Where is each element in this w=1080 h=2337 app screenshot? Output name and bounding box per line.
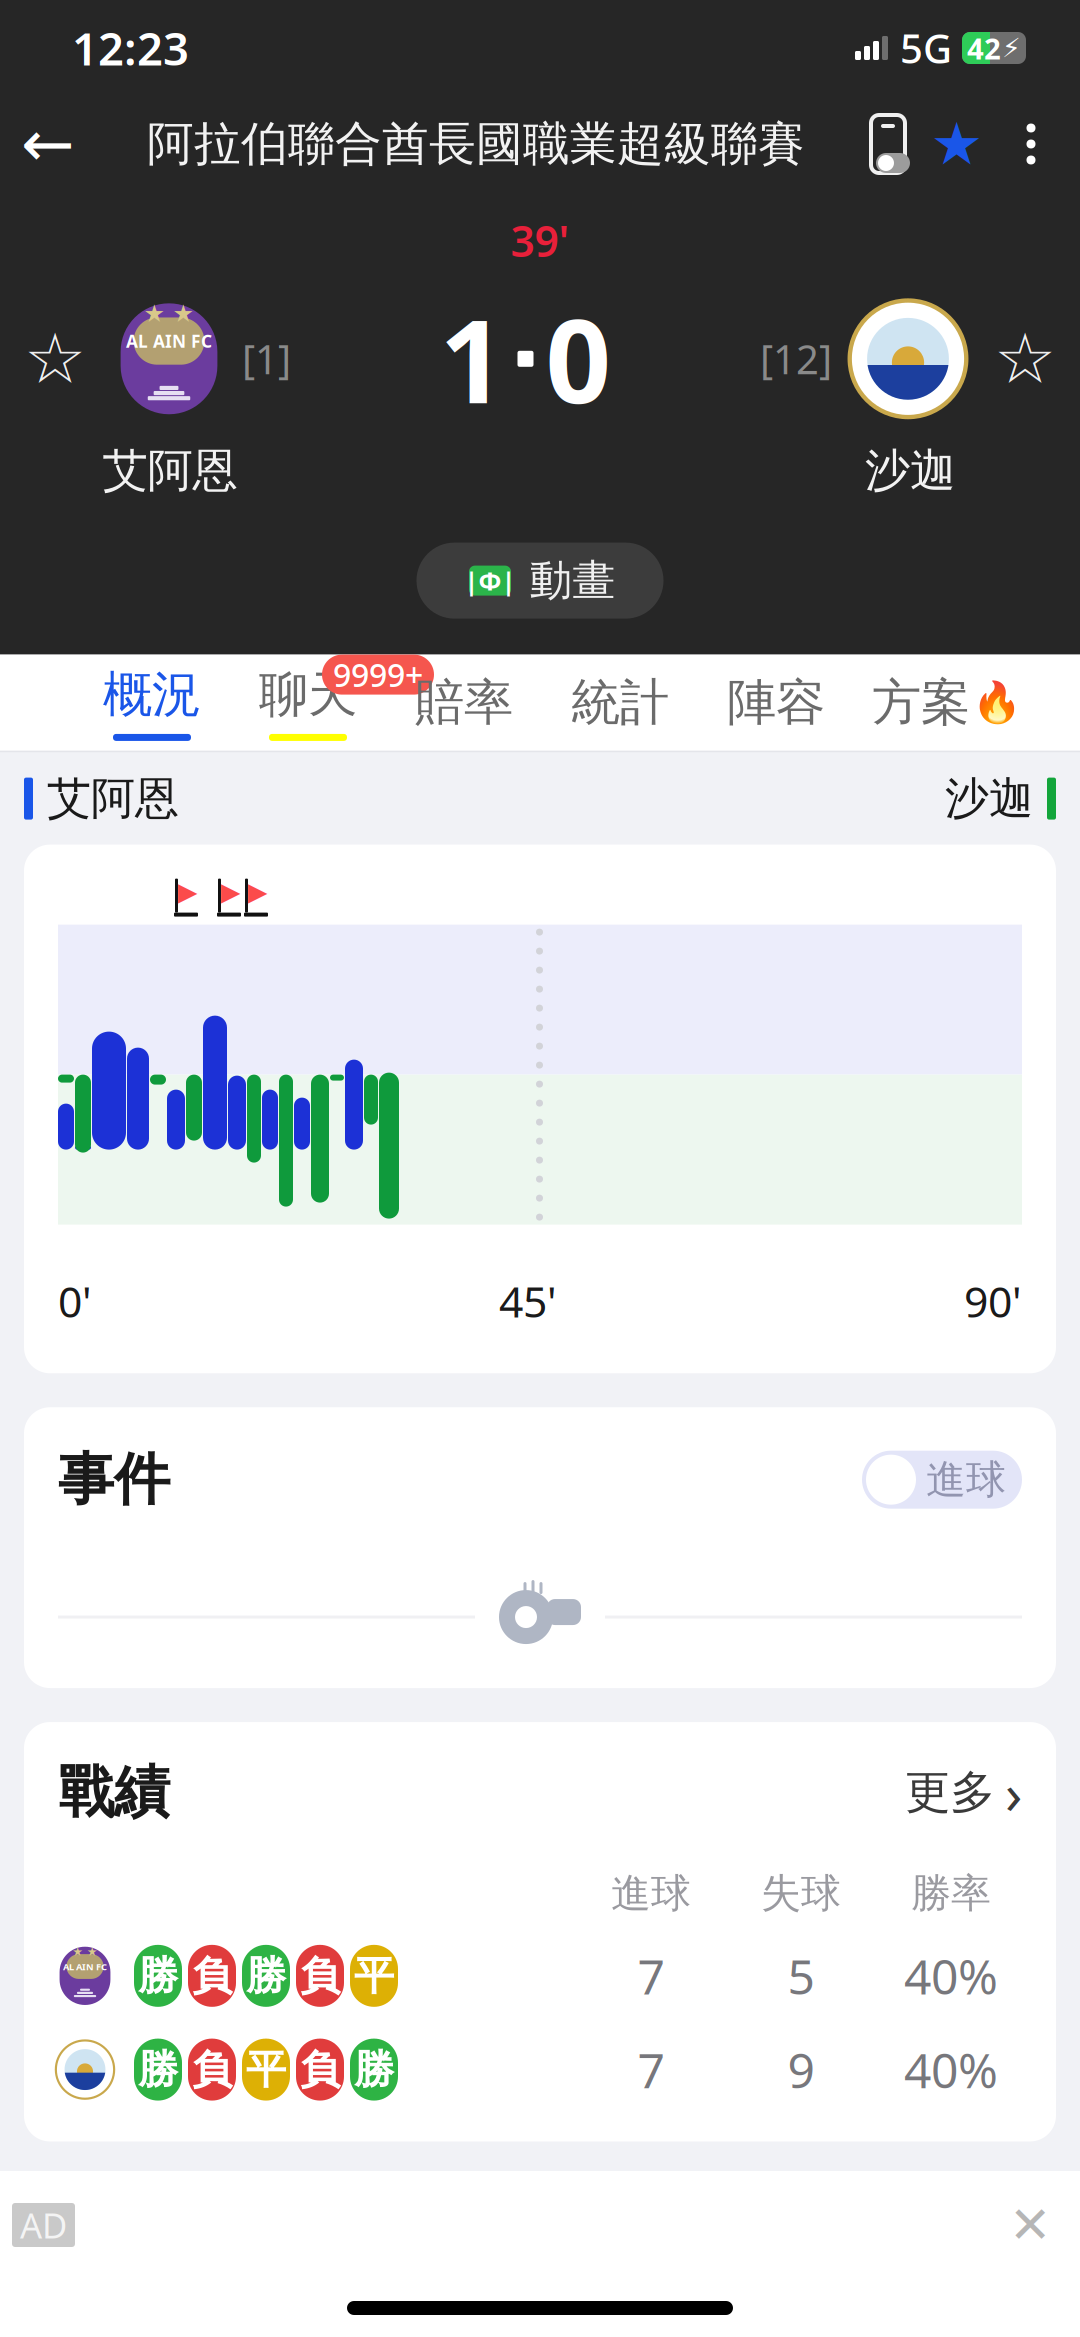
staticText: 40% <box>904 1944 998 2008</box>
staticText: AL AIN FC <box>63 1960 107 1973</box>
staticText: ✕ <box>1009 2196 1051 2254</box>
staticText: 7 <box>637 1944 664 2008</box>
staticText: › <box>1005 1755 1022 1830</box>
staticText: 進球 <box>926 1455 1006 1504</box>
staticText: 更多 <box>905 1765 995 1820</box>
staticText: ★ <box>72 1945 83 1958</box>
staticText: 方案 <box>872 672 970 733</box>
button[interactable]: Favourite <box>920 96 994 192</box>
staticText: 勝 <box>138 1951 178 2000</box>
staticText: 艾阿恩 <box>102 443 237 499</box>
staticText: 賠率 <box>415 672 513 733</box>
staticText: 平 <box>246 2045 286 2094</box>
staticText: 失球 <box>761 1869 841 1918</box>
staticText: 5 <box>787 1944 814 2008</box>
button[interactable]: |Φ| <box>416 543 663 619</box>
staticText: 負 <box>300 2045 340 2094</box>
staticText: ⚡︎ <box>1002 33 1021 63</box>
staticText: 0' <box>58 1273 92 1329</box>
staticText: ★ <box>930 111 983 177</box>
staticText: ★ <box>172 300 194 327</box>
staticText: 沙迦 <box>945 772 1033 826</box>
staticText: 勝 <box>354 2045 394 2094</box>
button[interactable]: Notifications <box>856 96 920 192</box>
button[interactable]: Follow 沙迦 <box>970 304 1080 414</box>
button[interactable]: 聊天 <box>230 655 386 751</box>
staticText: 7 <box>637 2038 664 2101</box>
button[interactable]: Back <box>0 96 96 192</box>
staticText: 阿拉伯聯合酋長國職業超級聯賽 <box>147 115 805 173</box>
staticText: 進球 <box>611 1869 691 1918</box>
staticText: 勝率 <box>911 1869 991 1918</box>
staticText: 9 <box>787 2038 814 2101</box>
staticText: 5G <box>900 21 952 74</box>
staticText: AD <box>20 2202 67 2248</box>
button[interactable]: Close ad <box>994 2189 1066 2261</box>
staticText: [12] <box>760 332 832 385</box>
staticText: 0 <box>545 283 611 435</box>
button[interactable]: 概況 <box>74 655 230 751</box>
staticText: 負 <box>192 1951 232 2000</box>
staticText: 🔥 <box>972 680 1022 725</box>
staticText: 沙迦 <box>865 443 955 499</box>
staticText: [1] <box>242 332 291 385</box>
staticText: ★ <box>87 1945 98 1958</box>
staticText: 負 <box>300 1951 340 2000</box>
staticText: 事件 <box>58 1445 170 1514</box>
staticText: ▶ <box>248 877 267 906</box>
staticText: 統計 <box>571 672 669 733</box>
button[interactable]: More options <box>994 96 1068 192</box>
button[interactable]: 更多 <box>905 1762 1022 1822</box>
staticText: 陣容 <box>727 672 825 733</box>
staticText: 平 <box>354 1951 394 2000</box>
staticText: 9999+ <box>333 653 423 696</box>
staticText: ▶ <box>221 877 240 906</box>
staticText: 1 <box>439 283 505 435</box>
staticText: |Φ| <box>464 564 515 597</box>
staticText: 勝 <box>246 1951 286 2000</box>
staticText: 動畫 <box>529 554 615 607</box>
button[interactable]: 統計 <box>542 655 698 751</box>
staticText: ← <box>21 108 75 180</box>
button[interactable]: 方案 <box>854 655 1040 751</box>
staticText: 概況 <box>103 664 201 725</box>
staticText: 勝 <box>138 2045 178 2094</box>
staticText: AL AIN FC <box>126 330 212 353</box>
staticText: ☆ <box>994 319 1056 398</box>
staticText: ☆ <box>24 319 86 398</box>
staticText: 40% <box>904 2038 998 2101</box>
staticText: 12:23 <box>72 18 189 78</box>
staticText: 42 <box>967 28 1001 67</box>
staticText: ▶ <box>178 877 197 906</box>
staticText: 90' <box>964 1273 1022 1329</box>
staticText: 負 <box>192 2045 232 2094</box>
staticText: 聊天 <box>259 664 357 725</box>
staticText: 39' <box>510 212 569 269</box>
button[interactable]: Follow 艾阿恩 <box>0 304 110 414</box>
staticText: 艾阿恩 <box>47 772 179 826</box>
staticText: 45' <box>499 1273 557 1329</box>
button[interactable]: 陣容 <box>698 655 854 751</box>
button[interactable]: 賠率 <box>386 655 542 751</box>
staticText: ★ <box>143 300 165 327</box>
staticText: 戰績 <box>58 1758 170 1827</box>
button[interactable]: 進球 <box>862 1451 1022 1509</box>
